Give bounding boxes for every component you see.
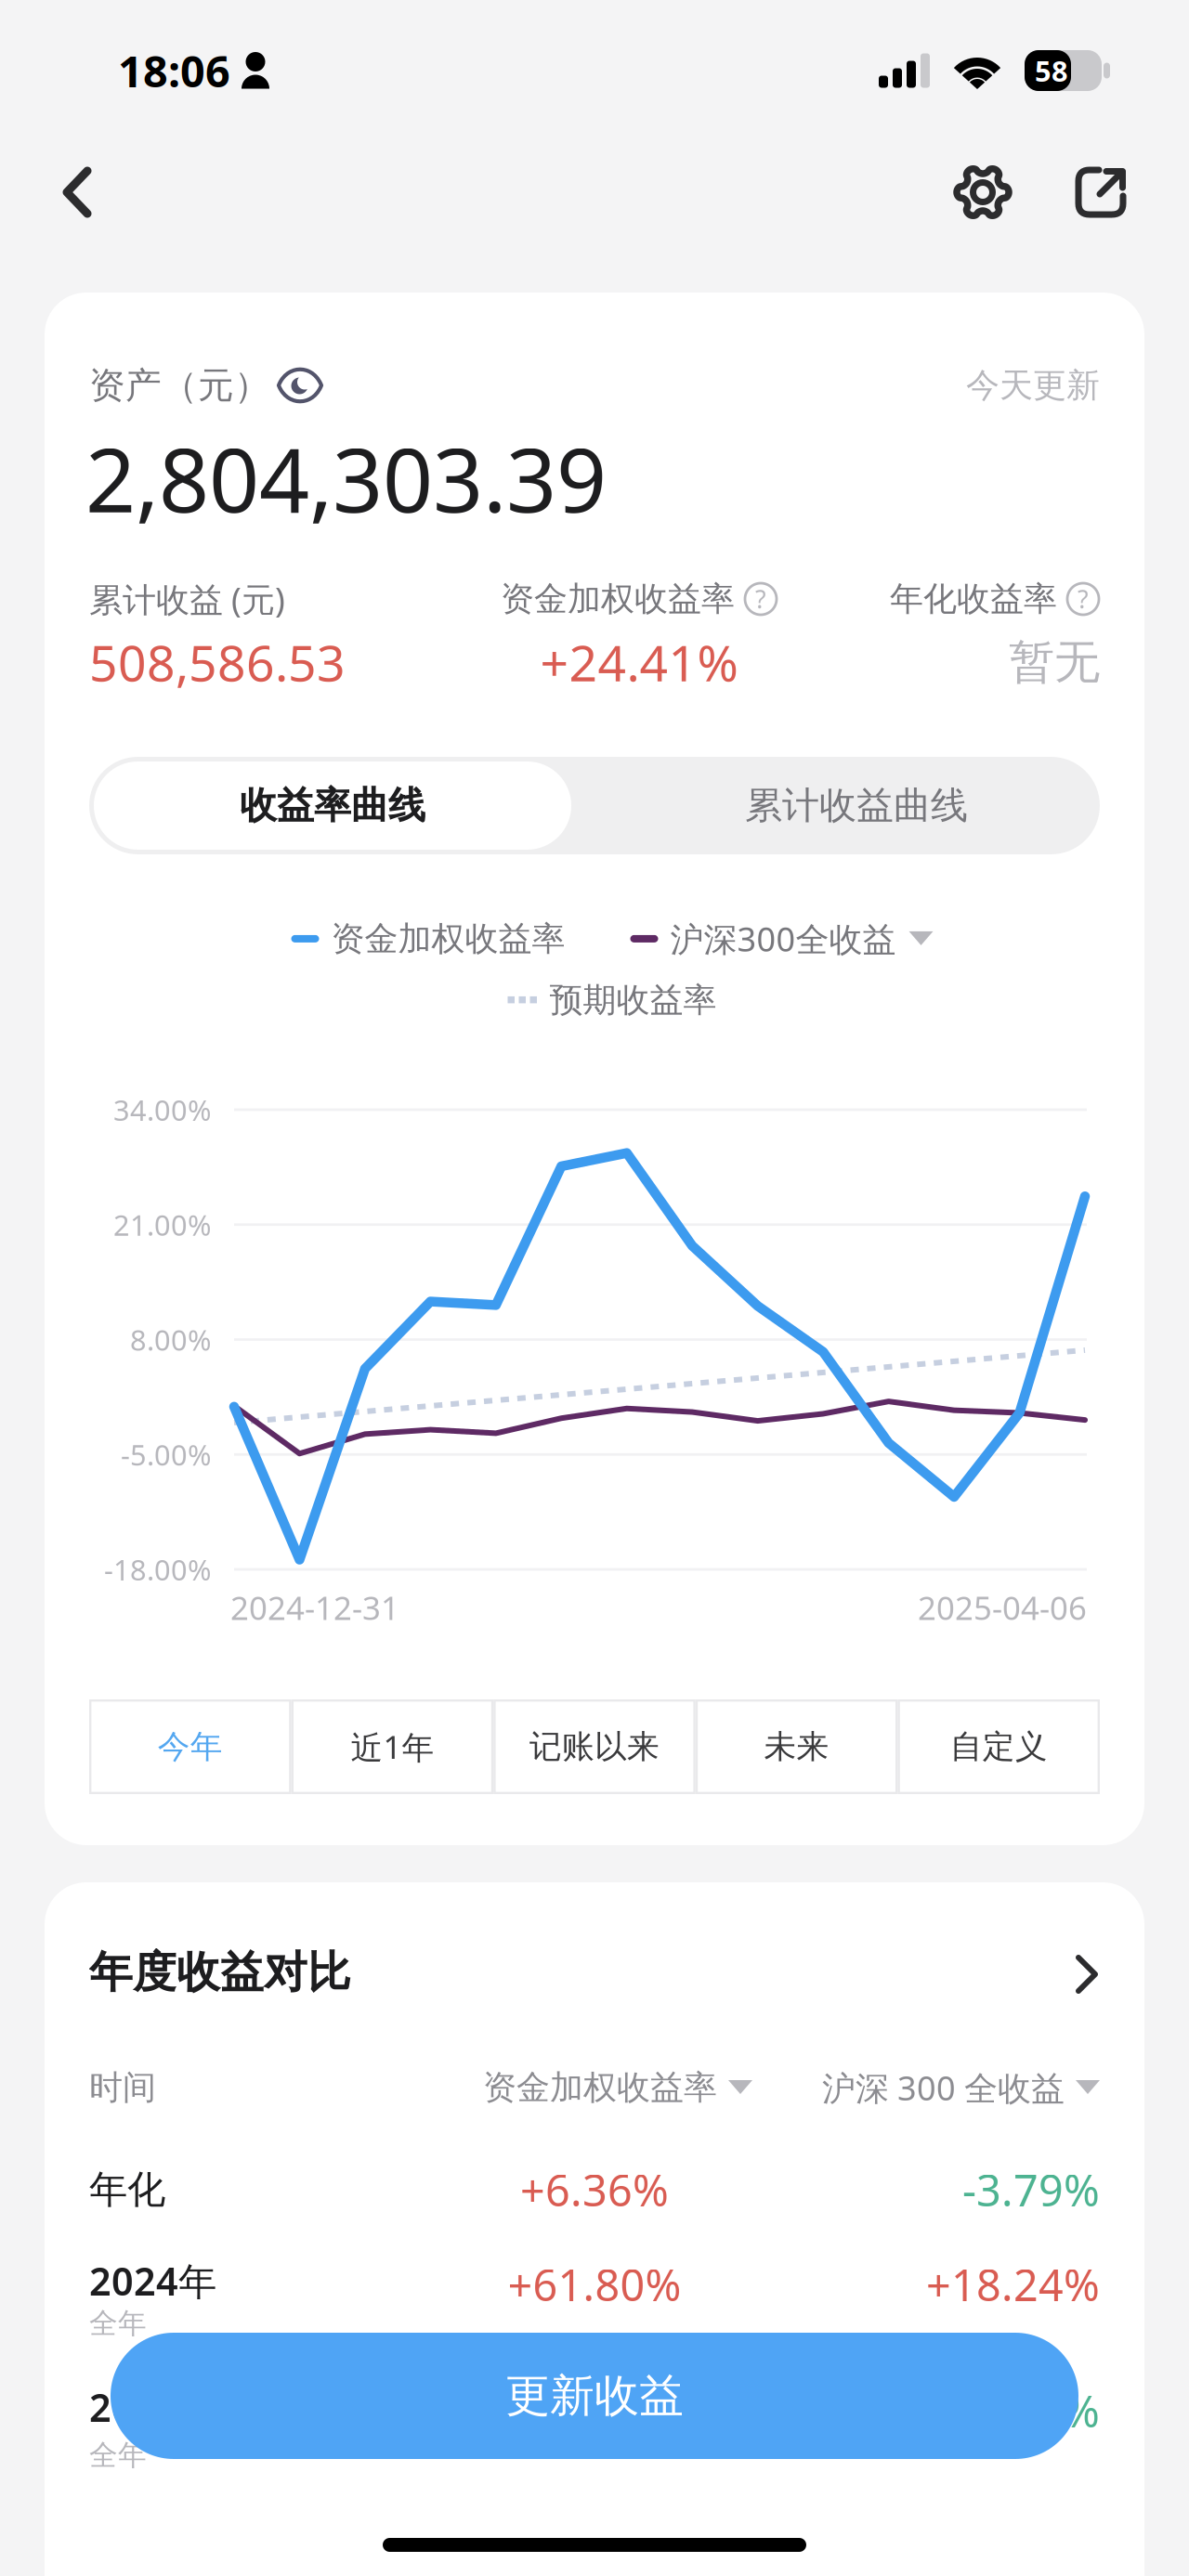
staticText: 年化收益率 [890, 578, 1057, 619]
button[interactable]: Settings [924, 141, 1041, 243]
staticText: +18.24% [926, 2256, 1100, 2313]
staticText: 今年 [158, 1727, 223, 1767]
staticText: 时间 [89, 2067, 156, 2108]
button[interactable]: Back [0, 141, 134, 243]
button[interactable]: 年度收益对比 [45, 1882, 1144, 2020]
staticText: 508,586.53 [89, 629, 346, 695]
staticText: 34.00% [113, 1091, 211, 1129]
staticText: +6.36% [520, 2161, 669, 2218]
staticText: 18:06 [118, 42, 230, 99]
staticText: 21.00% [113, 1206, 211, 1244]
button[interactable]: 收益率曲线 [94, 761, 571, 850]
staticText: 2024年 [89, 2255, 216, 2306]
staticText: 今天更新 [966, 365, 1100, 406]
button[interactable]: 今年 [89, 1699, 291, 1794]
staticText: 2,804,303.39 [85, 420, 607, 537]
button[interactable]: 自定义 [898, 1699, 1100, 1794]
staticText: 2024-12-31 [230, 1586, 399, 1629]
staticText: 资金加权收益率 [331, 918, 565, 959]
staticText: 沪深300全收益 [670, 917, 896, 961]
button[interactable]: Share [1041, 141, 1189, 243]
staticText: -18.00% [104, 1550, 211, 1588]
staticText: 记账以来 [529, 1727, 660, 1767]
staticText: -8.42% [526, 2382, 663, 2439]
staticText: 2023年 [89, 2382, 216, 2433]
staticText: 沪深 300 全收益 [822, 2065, 1065, 2110]
staticText: 更新收益 [505, 2368, 684, 2423]
staticText: 全年 [89, 2306, 147, 2341]
staticText: 收益率曲线 [240, 783, 425, 828]
staticText: 年化 [89, 2166, 165, 2213]
staticText: 预期收益率 [549, 980, 717, 1021]
button[interactable]: Hide balance [270, 367, 324, 404]
staticText: 8.00% [130, 1321, 211, 1358]
staticText: +24.41% [540, 629, 738, 695]
button[interactable]: 近1年 [291, 1699, 493, 1794]
button[interactable]: 未来 [696, 1699, 898, 1794]
staticText: 全年 [89, 2438, 147, 2473]
staticText: 资金加权收益率 [483, 2067, 717, 2108]
staticText: ? [1078, 583, 1089, 615]
staticText: ? [755, 583, 766, 615]
staticText: 未来 [764, 1727, 829, 1767]
staticText: 58 [1035, 52, 1068, 89]
button[interactable]: 记账以来 [493, 1699, 696, 1794]
button[interactable]: 累计收益曲线 [618, 761, 1095, 850]
staticText: 资金加权收益率 [501, 578, 735, 619]
staticText: +61.80% [508, 2256, 681, 2313]
staticText: 近1年 [351, 1725, 434, 1768]
staticText: -11.38% [937, 2382, 1100, 2439]
staticText: 累计收益曲线 [745, 783, 968, 828]
staticText: -5.00% [121, 1436, 211, 1473]
staticText: 年度收益对比 [89, 1946, 351, 1999]
staticText: 暂无 [1009, 634, 1100, 690]
staticText: 累计收益 (元) [89, 577, 285, 621]
staticText: 资产（元） [89, 363, 270, 407]
staticText: 自定义 [950, 1727, 1048, 1767]
button[interactable]: 更新收益 [111, 2333, 1078, 2459]
staticText: -3.79% [962, 2161, 1100, 2218]
staticText: 2025-04-06 [918, 1586, 1087, 1629]
